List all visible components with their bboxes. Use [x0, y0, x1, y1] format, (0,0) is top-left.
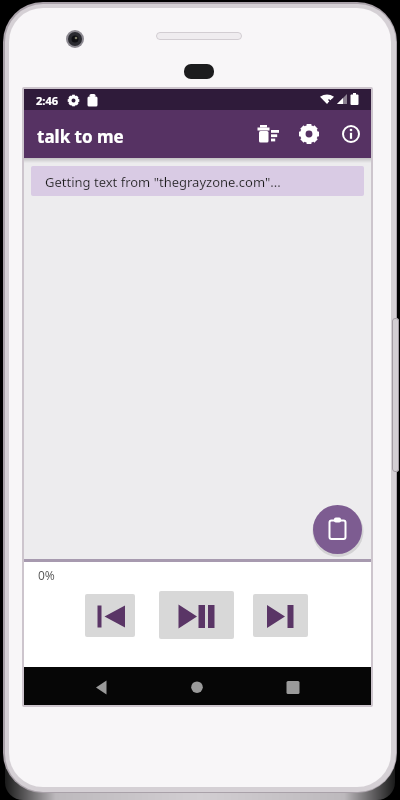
button[interactable] — [252, 118, 284, 150]
staticText: 0% — [38, 567, 55, 583]
staticText: Getting text from "thegrayzone.com"... — [45, 173, 281, 191]
button[interactable] — [88, 674, 114, 700]
button[interactable] — [293, 118, 325, 150]
button[interactable] — [253, 594, 308, 637]
button[interactable] — [313, 505, 362, 554]
button[interactable] — [85, 594, 135, 637]
button[interactable]: Getting text from "thegrayzone.com"... — [31, 166, 364, 196]
staticText: 2:46 — [36, 93, 58, 108]
button[interactable] — [159, 591, 234, 639]
button[interactable] — [335, 118, 367, 150]
button[interactable] — [280, 674, 306, 700]
staticText: talk to me — [37, 125, 124, 148]
button[interactable] — [184, 674, 210, 700]
